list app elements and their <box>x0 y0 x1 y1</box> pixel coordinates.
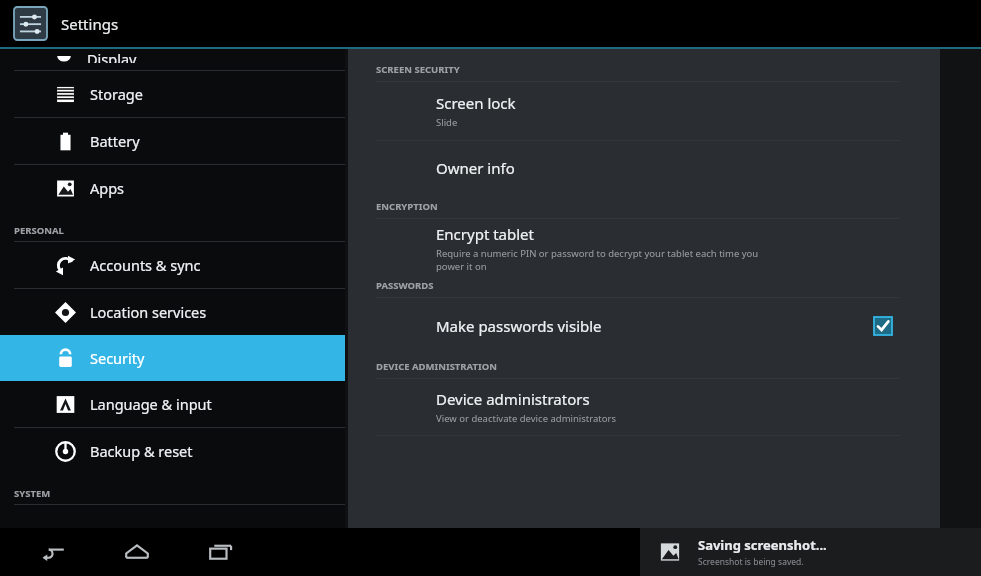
button[interactable]: Make passwords visible <box>348 298 940 354</box>
staticText: Apps <box>90 178 125 198</box>
staticText: Security <box>90 348 145 368</box>
staticText: Language & input <box>90 394 212 414</box>
staticText: Display <box>87 49 137 63</box>
button[interactable]: Back <box>26 528 80 576</box>
button[interactable]: Accounts & sync <box>0 242 345 288</box>
staticText: View or deactivate device administrators <box>436 412 616 425</box>
staticText: Storage <box>90 84 143 104</box>
staticText: Location services <box>90 302 207 322</box>
staticText: Backup & reset <box>90 441 193 461</box>
button[interactable]: Saving screenshot... <box>640 528 981 576</box>
staticText: SCREEN SECURITY <box>376 63 460 76</box>
staticText: Saving screenshot... <box>698 536 827 554</box>
button[interactable]: Screen lock <box>348 82 940 140</box>
staticText: PASSWORDS <box>376 279 434 292</box>
staticText: Encrypt tablet <box>436 224 534 244</box>
button[interactable]: Display <box>0 49 345 63</box>
staticText: Make passwords visible <box>436 316 602 336</box>
staticText: Screen lock <box>436 93 516 113</box>
button[interactable]: Backup & reset <box>0 428 345 474</box>
button[interactable]: Security <box>0 335 345 381</box>
staticText: Battery <box>90 131 140 151</box>
button[interactable]: Language & input <box>0 381 345 427</box>
button[interactable]: Battery <box>0 118 345 164</box>
staticText: Require a numeric PIN or password to dec… <box>436 247 759 273</box>
staticText: Owner info <box>436 158 515 178</box>
staticText: Accounts & sync <box>90 255 201 275</box>
button[interactable]: Owner info <box>348 141 940 194</box>
staticText: Device administrators <box>436 389 590 409</box>
staticText: Screenshot is being saved. <box>698 556 804 568</box>
button[interactable]: Recent apps <box>194 528 248 576</box>
button[interactable]: Storage <box>0 71 345 117</box>
staticText: SYSTEM <box>14 487 51 500</box>
button[interactable]: Device administrators <box>348 379 940 435</box>
staticText: DEVICE ADMINISTRATION <box>376 360 497 373</box>
button[interactable]: Encrypt tablet <box>348 219 940 277</box>
staticText: Settings <box>61 14 119 34</box>
staticText: Slide <box>436 116 458 129</box>
staticText: ENCRYPTION <box>376 200 438 213</box>
button[interactable]: Home <box>110 528 164 576</box>
staticText: PERSONAL <box>14 224 64 237</box>
button[interactable]: Location services <box>0 289 345 335</box>
button[interactable]: Apps <box>0 165 345 211</box>
